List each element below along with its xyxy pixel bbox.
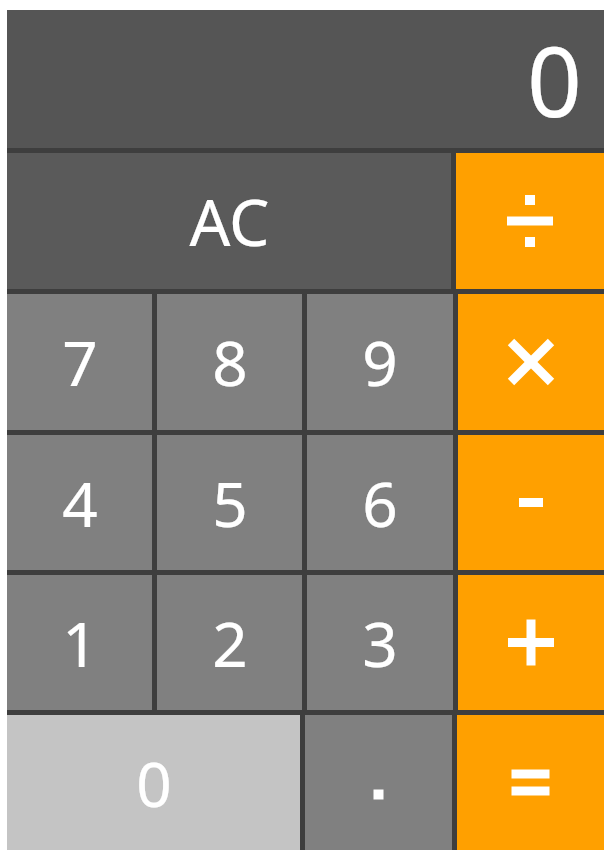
button[interactable]: Equals bbox=[457, 715, 604, 850]
button[interactable]: 5 bbox=[157, 435, 302, 570]
button[interactable]: Multiply bbox=[458, 294, 604, 430]
button[interactable]: 0 bbox=[7, 715, 300, 850]
staticText: 9 bbox=[362, 320, 398, 404]
button[interactable]: 3 bbox=[307, 575, 453, 710]
button[interactable]: Divide bbox=[456, 153, 604, 289]
button[interactable]: 1 bbox=[7, 575, 152, 710]
staticText: 6 bbox=[362, 461, 398, 545]
staticText: 2 bbox=[212, 601, 248, 685]
button[interactable]: AC bbox=[7, 153, 451, 289]
button[interactable]: Decimal point bbox=[305, 715, 452, 850]
staticText: 0 bbox=[136, 741, 172, 825]
staticText: AC bbox=[189, 178, 270, 265]
button[interactable]: 8 bbox=[157, 294, 302, 430]
button[interactable]: 4 bbox=[7, 435, 152, 570]
staticText: 8 bbox=[212, 320, 248, 404]
button[interactable]: 7 bbox=[7, 294, 152, 430]
button[interactable]: Add bbox=[458, 575, 604, 710]
button[interactable]: 2 bbox=[157, 575, 302, 710]
button[interactable]: Subtract bbox=[458, 435, 604, 570]
staticText: 0 bbox=[527, 14, 582, 145]
staticText: 3 bbox=[362, 601, 398, 685]
staticText: 1 bbox=[62, 601, 98, 685]
button[interactable]: 9 bbox=[307, 294, 453, 430]
staticText: 5 bbox=[212, 461, 248, 545]
button[interactable]: 6 bbox=[307, 435, 453, 570]
staticText: 4 bbox=[62, 461, 98, 545]
staticText: 7 bbox=[62, 320, 98, 404]
